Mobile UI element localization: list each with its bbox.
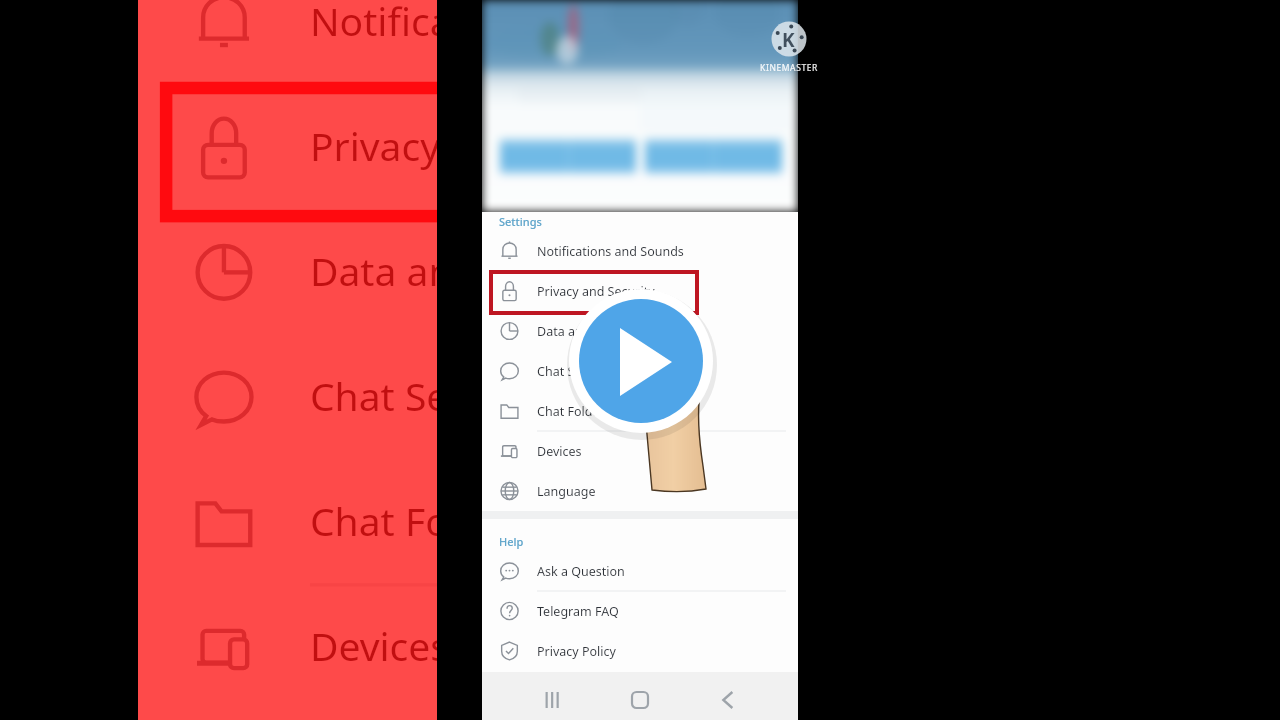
button[interactable]: Privacy Policy [482, 631, 798, 671]
button[interactable]: Language [482, 471, 798, 511]
button[interactable]: Chat Settings [482, 351, 798, 391]
button[interactable]: Play video [569, 289, 713, 433]
staticText: KINEMASTER [749, 62, 829, 74]
button[interactable]: Data and Storage [482, 311, 798, 351]
button[interactable]: Notifications and Sounds [482, 231, 798, 271]
button[interactable]: Chat Folders [482, 391, 798, 431]
button[interactable]: Back [710, 674, 746, 710]
button[interactable]: Privacy and Security [482, 271, 798, 311]
button[interactable]: Devices [482, 431, 798, 471]
button[interactable]: Telegram FAQ [482, 591, 798, 631]
staticText: K [782, 27, 795, 53]
button[interactable]: Ask a Question [482, 551, 798, 591]
button[interactable]: Home [622, 674, 658, 710]
button[interactable]: Recent apps [534, 674, 570, 710]
